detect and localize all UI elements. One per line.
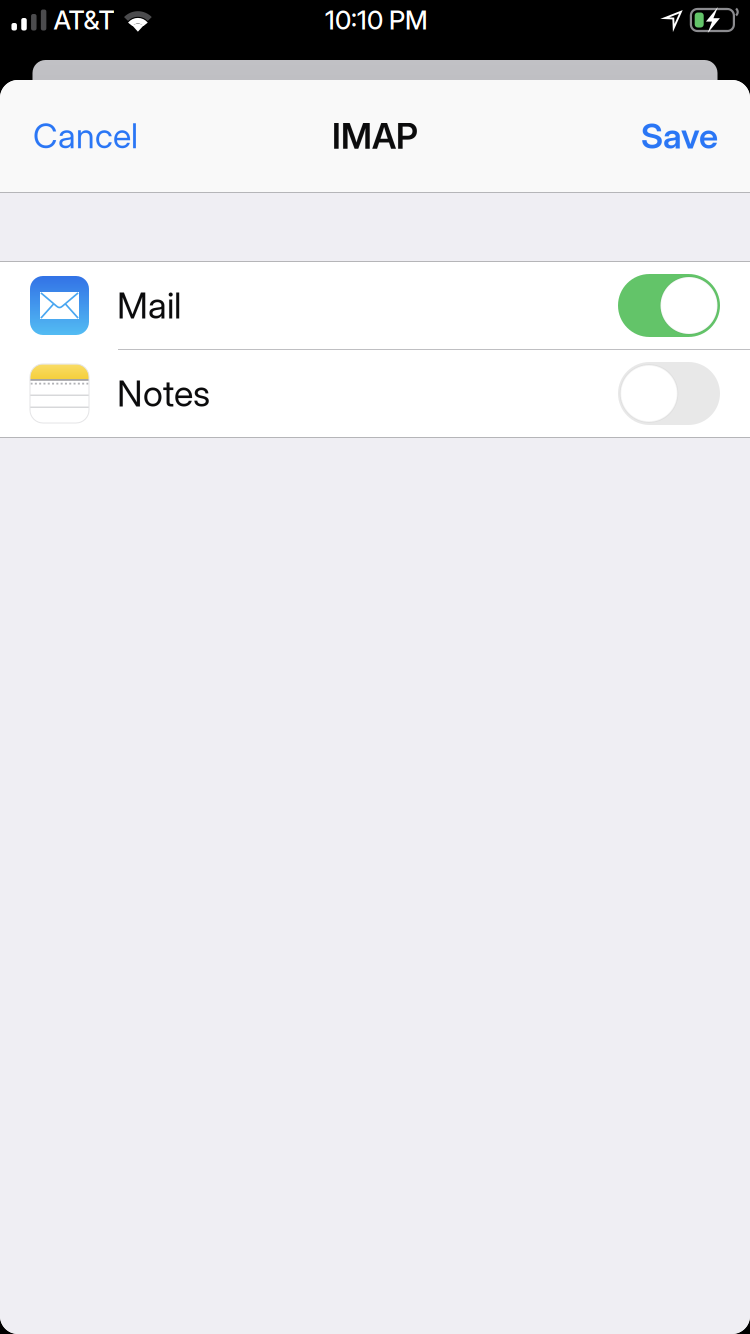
button[interactable]: Save (617, 92, 750, 180)
staticText: AT&T (53, 4, 114, 36)
staticText: 10:10 PM (325, 4, 428, 36)
button[interactable]: Notes, off (618, 362, 720, 425)
staticText: IMAP (332, 115, 418, 157)
staticText: Save (641, 115, 718, 157)
staticText: Notes (117, 372, 210, 415)
staticText: Cancel (33, 115, 138, 156)
staticText: Mail (117, 284, 181, 327)
button[interactable]: Mail, on (618, 274, 720, 337)
button[interactable]: Cancel (0, 92, 162, 180)
